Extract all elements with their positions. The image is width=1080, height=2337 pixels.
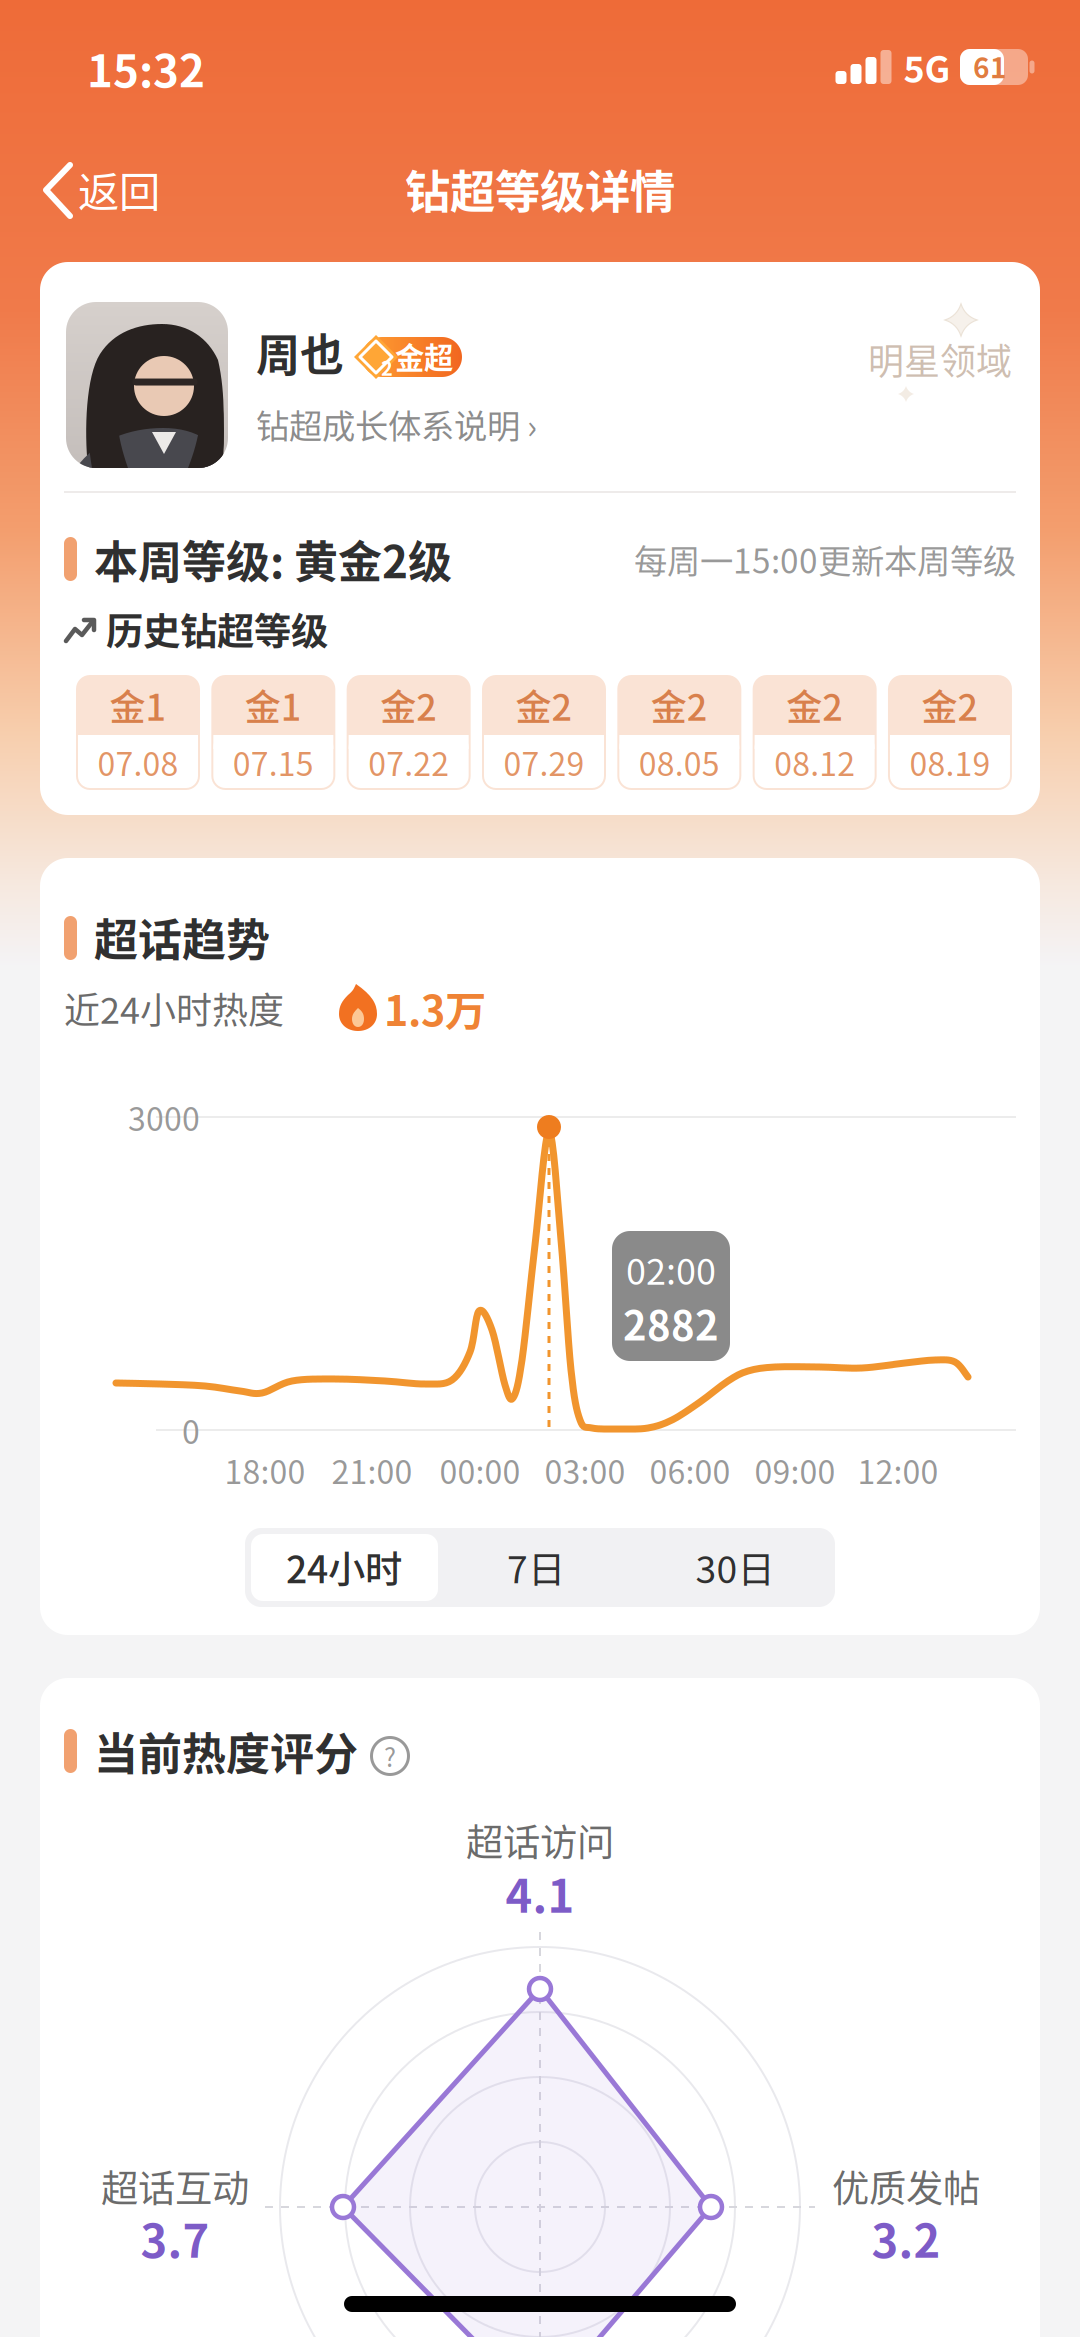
staticText: 0: [182, 1407, 200, 1453]
staticText: 优质发帖: [832, 2160, 980, 2212]
staticText: 4.1: [505, 1861, 574, 1925]
staticText: 超话趋势: [94, 906, 270, 968]
staticText: 5G: [903, 42, 950, 92]
staticText: 3.2: [871, 2206, 940, 2270]
staticText: 08.05: [639, 739, 720, 785]
staticText: 2882: [623, 1295, 719, 1351]
staticText: 1.3万: [384, 979, 486, 1037]
staticText: 06:00: [649, 1447, 730, 1493]
staticText: 24小时: [286, 1541, 402, 1593]
staticText: 金1: [109, 680, 166, 730]
staticText: 历史钻超等级: [106, 603, 328, 655]
staticText: 金2: [651, 680, 708, 730]
staticText: 12:00: [857, 1447, 938, 1493]
staticText: 返回: [78, 160, 160, 218]
staticText: 21:00: [331, 1447, 412, 1493]
staticText: 07.29: [503, 739, 584, 785]
staticText: 7日: [507, 1541, 565, 1593]
staticText: 当前热度评分: [94, 1720, 358, 1782]
staticText: 明星领域: [868, 334, 1012, 384]
staticText: 超话互动: [101, 2160, 249, 2212]
staticText: 金2: [380, 680, 437, 730]
staticText: 08.12: [774, 739, 855, 785]
staticText: 15:32: [87, 37, 205, 99]
staticText: 00:00: [439, 1447, 520, 1493]
staticText: 61: [973, 46, 1007, 86]
staticText: 金2: [515, 680, 572, 730]
staticText: 金超: [395, 335, 453, 377]
staticText: 金2: [786, 680, 843, 730]
staticText: 超话访问: [466, 1814, 614, 1866]
staticText: 18:00: [224, 1447, 305, 1493]
staticText: 3.7: [140, 2206, 209, 2270]
staticText: 每周一15:00更新本周等级: [634, 535, 1016, 583]
staticText: 周也: [256, 321, 344, 383]
staticText: 03:00: [544, 1447, 625, 1493]
staticText: 07.22: [368, 739, 449, 785]
staticText: 02:00: [626, 1244, 716, 1294]
staticText: 08.19: [909, 739, 990, 785]
staticText: 金1: [245, 680, 302, 730]
staticText: 金2: [921, 680, 978, 730]
staticText: 09:00: [754, 1447, 835, 1493]
staticText: 近24小时热度: [64, 983, 284, 1033]
staticText: 07.08: [97, 739, 178, 785]
staticText: 30日: [695, 1541, 774, 1593]
staticText: 本周等级: 黄金2级: [94, 528, 452, 590]
staticText: 3000: [128, 1094, 200, 1140]
staticText: 钻超等级详情: [405, 157, 675, 221]
staticText: ?: [384, 1738, 396, 1774]
staticText: 07.15: [233, 739, 314, 785]
staticText: 钻超成长体系说明 ›: [256, 400, 537, 448]
staticText: 2: [381, 353, 393, 381]
